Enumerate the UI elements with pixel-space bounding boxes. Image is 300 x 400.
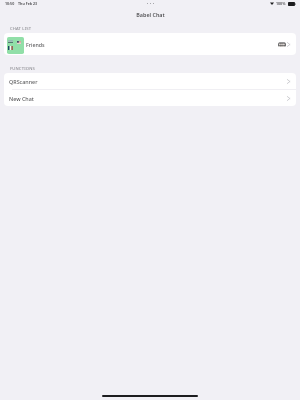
staticText: Babel Chat — [136, 11, 165, 18]
button[interactable]: New Chat — [4, 90, 296, 106]
staticText: FUNCTIONS — [10, 66, 35, 72]
staticText: QRScanner — [9, 78, 38, 85]
staticText: Thu Feb 23 — [18, 1, 38, 6]
button[interactable]: QRScanner — [4, 73, 296, 89]
other: Members — [278, 42, 286, 47]
button[interactable]: Friends — [4, 33, 296, 55]
staticText: Friends — [26, 41, 45, 48]
staticText: CHAT LIST — [10, 26, 32, 32]
staticText: 10:50 — [5, 1, 15, 6]
staticText: New Chat — [9, 95, 34, 102]
staticText: 100% — [276, 1, 286, 6]
